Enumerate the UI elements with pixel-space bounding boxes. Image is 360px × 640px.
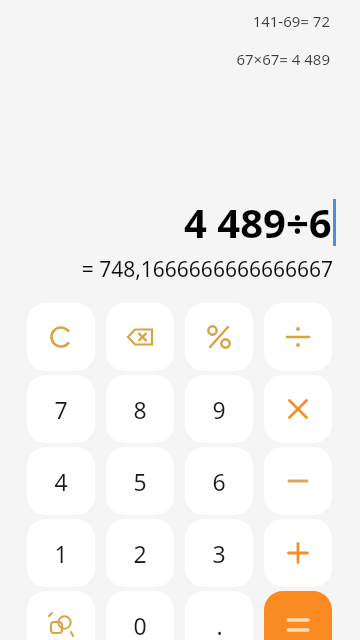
button[interactable]: 6 bbox=[185, 447, 253, 515]
staticText: 67×67= 4 489 bbox=[0, 49, 330, 69]
staticText: 5 bbox=[133, 466, 147, 497]
staticText: 4 bbox=[54, 466, 68, 497]
staticText: 2 bbox=[133, 538, 147, 569]
button[interactable]: Clear bbox=[27, 303, 95, 371]
staticText: 1 bbox=[54, 538, 68, 569]
button[interactable]: Multiply bbox=[264, 375, 332, 443]
button[interactable]: Backspace bbox=[106, 303, 174, 371]
button[interactable]: . bbox=[185, 591, 253, 640]
staticText: . bbox=[216, 610, 223, 640]
staticText: 9 bbox=[212, 394, 226, 425]
button[interactable]: 5 bbox=[106, 447, 174, 515]
button[interactable]: Percent bbox=[185, 303, 253, 371]
staticText: 141-69= 72 bbox=[0, 11, 330, 31]
staticText: 6 bbox=[212, 466, 226, 497]
button[interactable]: 0 bbox=[106, 591, 174, 640]
staticText: 3 bbox=[212, 538, 226, 569]
staticText: 0 bbox=[133, 610, 147, 640]
button[interactable]: 8 bbox=[106, 375, 174, 443]
staticText: 8 bbox=[133, 394, 147, 425]
button[interactable]: 4 bbox=[27, 447, 95, 515]
button[interactable]: Plus bbox=[264, 519, 332, 587]
button[interactable]: 2 bbox=[106, 519, 174, 587]
button[interactable]: 1 bbox=[27, 519, 95, 587]
staticText: 4 489÷6 bbox=[184, 195, 332, 249]
button[interactable]: Divide bbox=[264, 303, 332, 371]
staticText: = 748,1666666666666667 bbox=[0, 255, 333, 284]
button[interactable]: Minus bbox=[264, 447, 332, 515]
button[interactable]: 9 bbox=[185, 375, 253, 443]
button[interactable]: 3 bbox=[185, 519, 253, 587]
button[interactable]: Equals bbox=[264, 591, 332, 640]
button[interactable]: 7 bbox=[27, 375, 95, 443]
button[interactable]: Unit converter bbox=[27, 591, 95, 640]
staticText: 7 bbox=[54, 394, 68, 425]
